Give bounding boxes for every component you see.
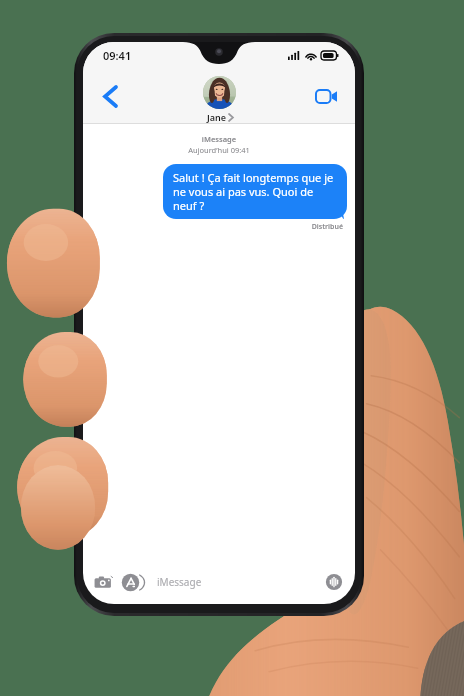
button[interactable]: FaceTime video call [309,79,343,113]
staticText: Aujourd’hui 09:41 [83,145,355,155]
staticText: 09:41 [103,48,132,63]
button[interactable]: Jane [203,76,236,123]
button[interactable]: Record audio message [325,573,343,591]
button[interactable]: Salut ! Ça fait longtemps que je ne vous… [163,164,347,219]
button[interactable]: Back [93,79,127,113]
staticText: iMessage [83,134,355,144]
staticText: Salut ! Ça fait longtemps que je ne vous… [173,170,337,213]
button[interactable]: Apps [120,572,140,592]
button[interactable]: Camera [93,572,113,592]
staticText: iMessage [157,575,202,589]
staticText: Distribué [83,222,343,232]
button[interactable]: iMessage [147,571,345,593]
staticText: Jane [207,111,227,123]
